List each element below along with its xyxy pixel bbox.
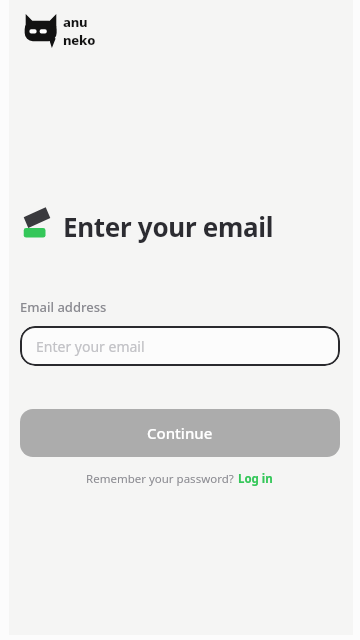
staticText: Continue — [147, 423, 213, 443]
staticText: neko — [63, 31, 96, 49]
button[interactable]: Enter your email — [20, 326, 340, 366]
staticText: Email address — [20, 298, 107, 316]
staticText: Enter your email — [36, 337, 145, 356]
staticText: Enter your email — [63, 209, 274, 244]
button[interactable]: Log in — [237, 469, 274, 489]
staticText: anu — [63, 13, 88, 31]
staticText: Log in — [238, 471, 273, 487]
button[interactable]: anu neko logo — [22, 11, 98, 51]
button[interactable]: Continue — [20, 409, 340, 457]
staticText: Remember your password? — [86, 471, 237, 487]
